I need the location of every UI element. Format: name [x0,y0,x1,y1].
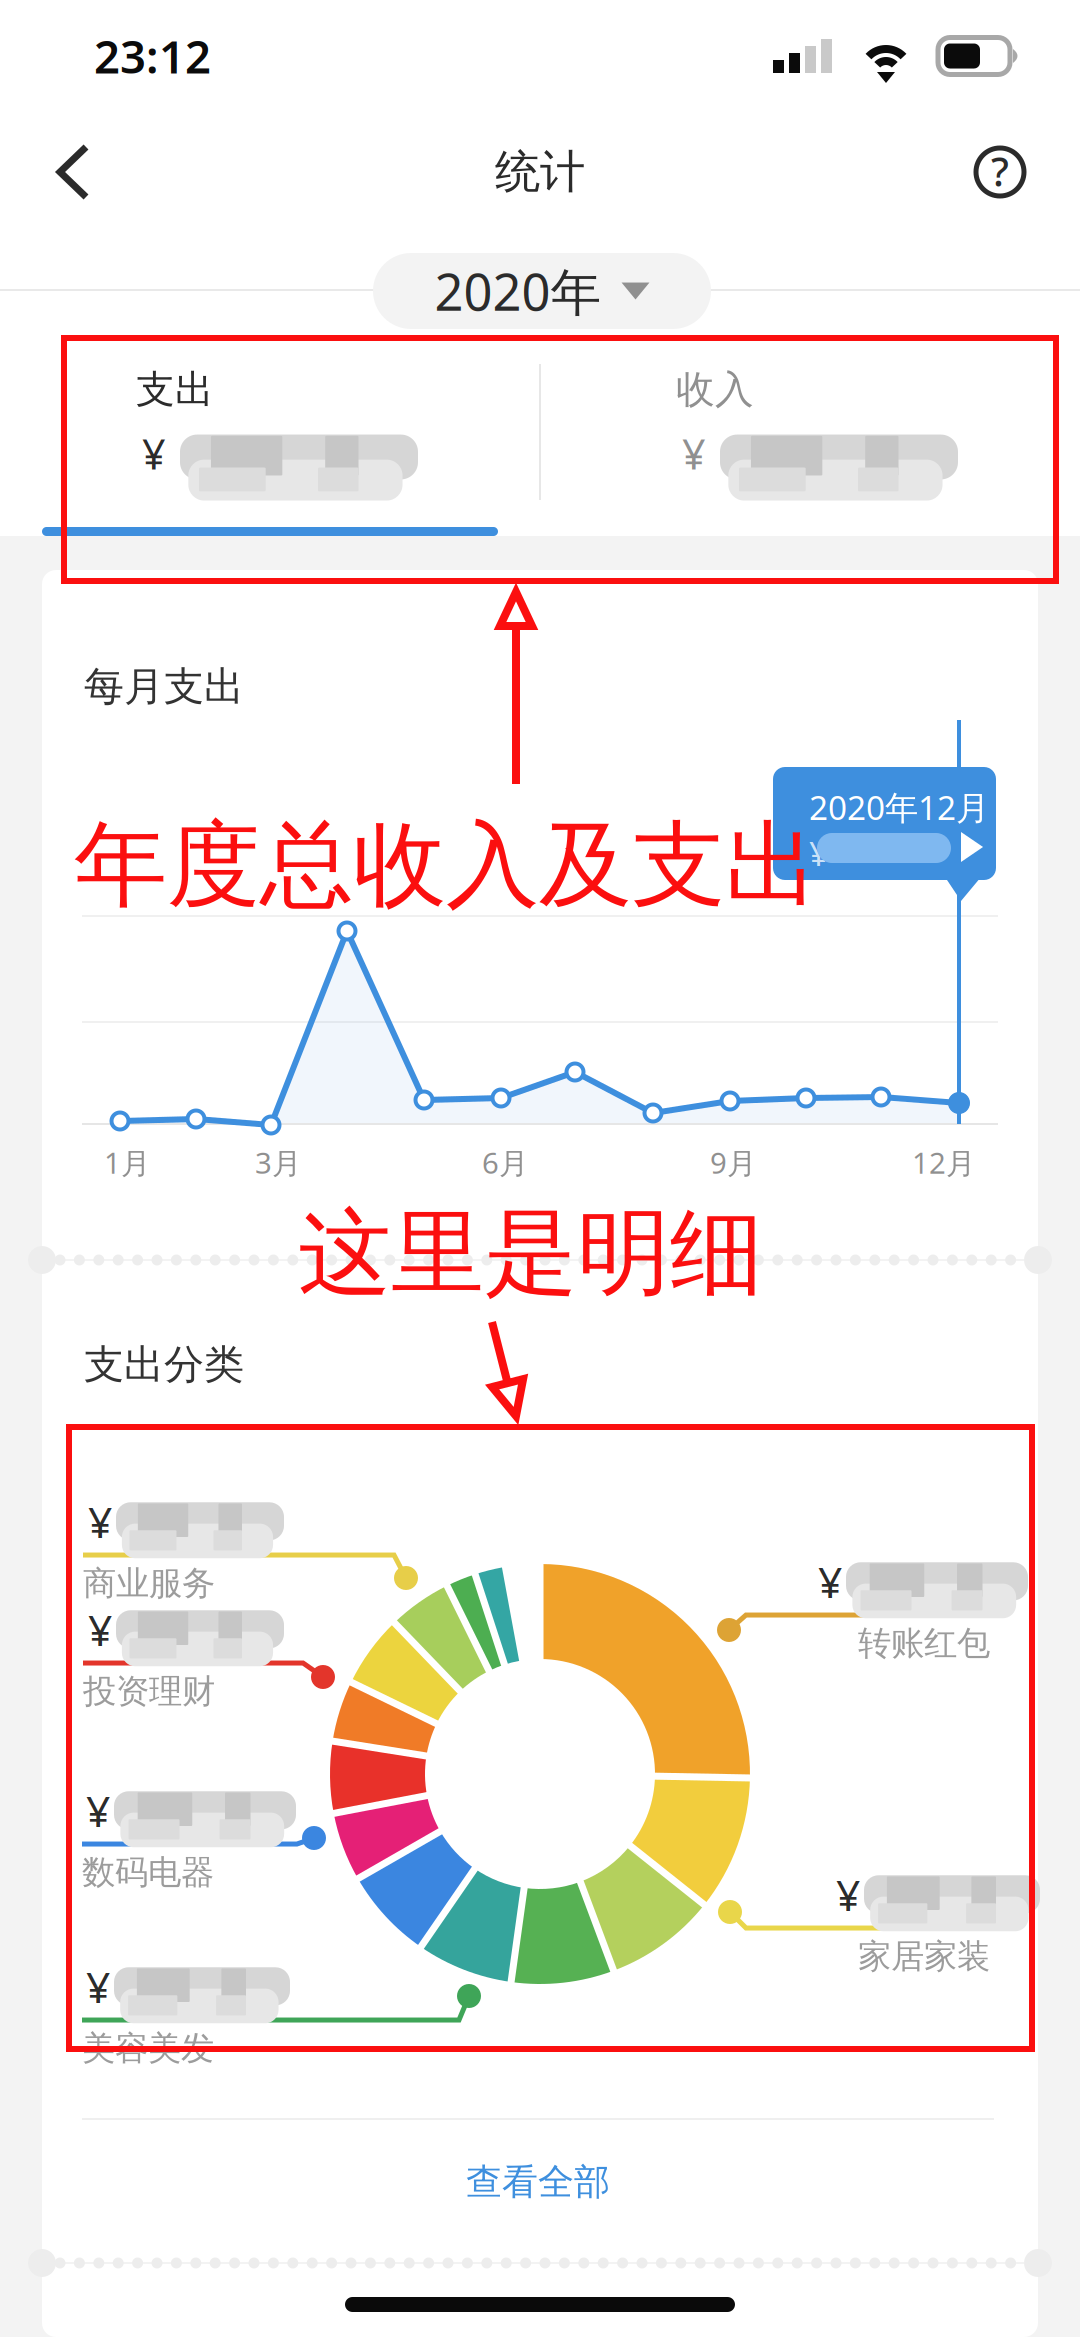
button[interactable]: 收入 [540,340,1080,526]
staticText: 23:12 [94,26,211,86]
staticText: 年度总收入及支出 [74,808,818,923]
staticText: ¥ [88,1601,112,1658]
staticText: ¥ [682,426,706,481]
staticText: 投资理财 [83,1671,215,1712]
staticText: 3月 [255,1143,301,1182]
staticText: 1月 [104,1143,150,1182]
staticText: ¥ [142,426,166,481]
button[interactable]: 2020年 [373,253,711,329]
button[interactable]: 查看全部 [82,2122,994,2242]
staticText: 这里是明细 [298,1196,763,1311]
staticText: ¥ [836,1866,860,1923]
staticText: 6月 [482,1143,528,1182]
staticText: ¥ [809,831,828,875]
staticText: 2020年12月 [809,785,989,829]
staticText: 每月支出 [84,662,244,711]
staticText: 数码电器 [82,1852,214,1893]
staticText: 9月 [710,1143,756,1182]
staticText: 2020年 [434,257,601,325]
staticText: 查看全部 [466,2160,610,2204]
staticText: 商业服务 [83,1563,215,1604]
button[interactable]: Help [945,124,1055,220]
staticText: 支出分类 [84,1340,244,1389]
staticText: ? [991,144,1009,197]
staticText: 支出 [136,366,214,413]
staticText: 美容美发 [82,2028,214,2069]
staticText: ¥ [88,1493,112,1550]
staticText: 家居家装 [858,1936,990,1977]
staticText: 统计 [495,144,585,200]
staticText: 12月 [912,1143,975,1182]
staticText: 收入 [676,366,754,413]
staticText: ¥ [86,1958,110,2015]
staticText: ¥ [818,1553,842,1610]
button[interactable]: 支出 [0,340,540,526]
staticText: ¥ [86,1782,110,1839]
button[interactable]: Back [18,124,128,220]
staticText: 转账红包 [858,1623,990,1664]
